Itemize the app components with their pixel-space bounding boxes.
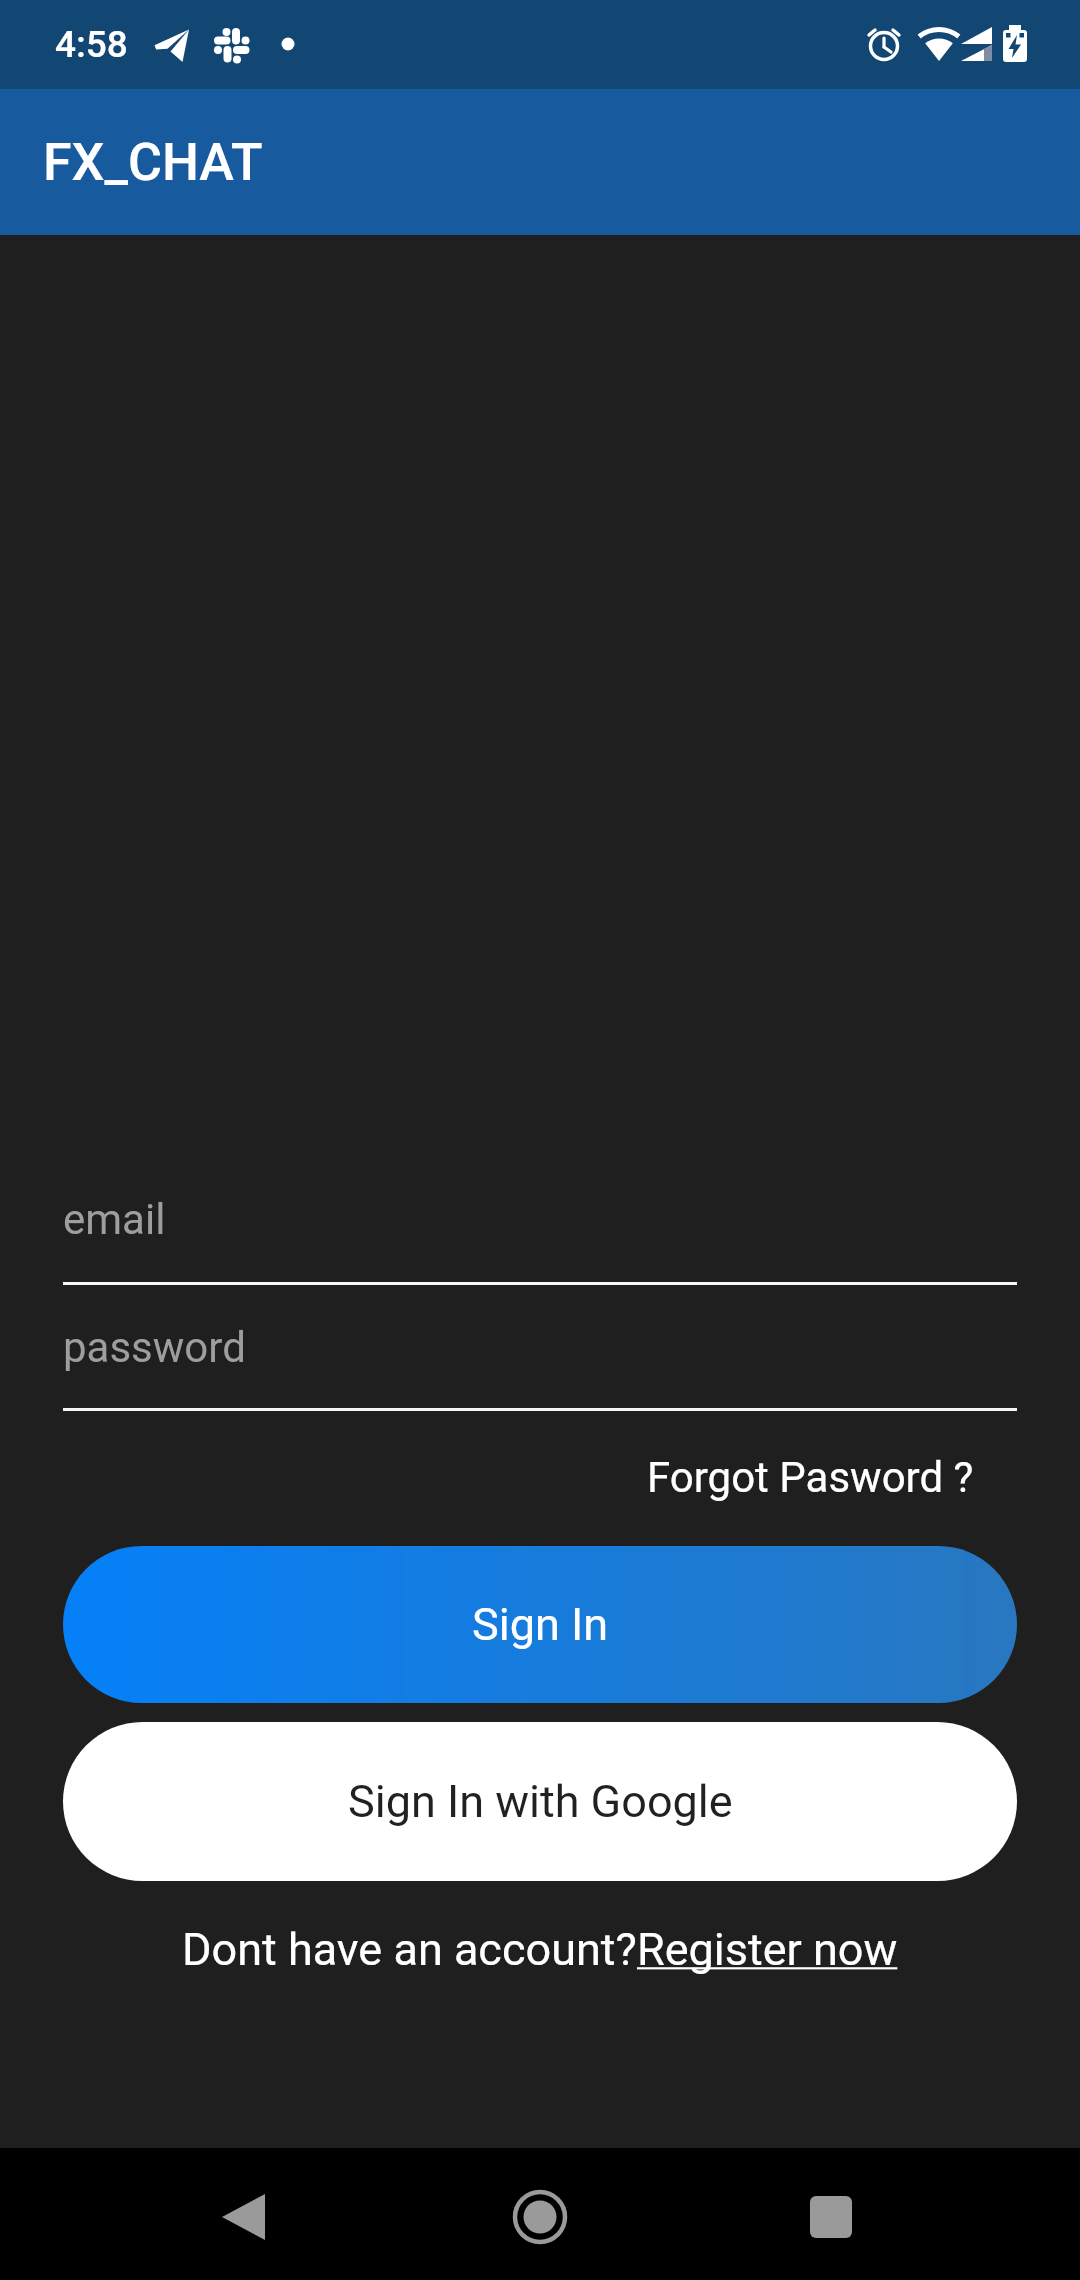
button[interactable]: Sign In with Google	[63, 1722, 1017, 1881]
staticText: Forgot Pasword ?	[647, 1453, 974, 1502]
staticText: password	[63, 1323, 246, 1372]
staticText: 4:58	[55, 23, 128, 66]
staticText: FX_CHAT	[43, 132, 263, 193]
button[interactable]	[720, 2148, 1080, 2280]
button[interactable]: Sign In	[63, 1546, 1017, 1703]
button[interactable]: Register now	[637, 1923, 898, 1976]
staticText: email	[63, 1195, 166, 1244]
staticText: Sign In	[472, 1598, 609, 1651]
button[interactable]	[0, 2148, 360, 2280]
button[interactable]	[360, 2148, 720, 2280]
staticText: Sign In with Google	[348, 1775, 733, 1828]
button[interactable]: Forgot Pasword ?	[63, 1447, 974, 1507]
staticText: Dont have an account?	[182, 1923, 637, 1976]
